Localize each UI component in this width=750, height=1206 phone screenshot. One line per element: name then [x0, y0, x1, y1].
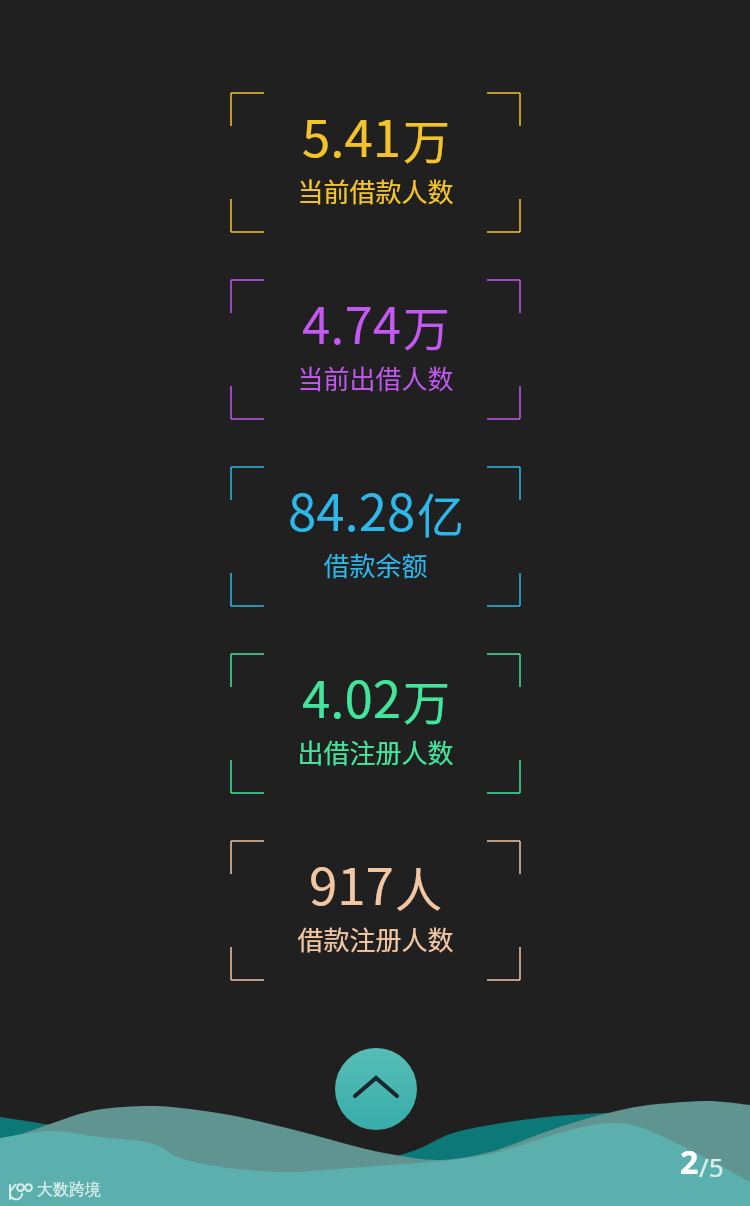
- staticText: 借款注册人数: [297, 920, 454, 958]
- staticText: 当前借款人数: [297, 172, 454, 210]
- staticText: 4.02: [302, 659, 402, 733]
- staticText: /5: [699, 1149, 724, 1184]
- staticText: 917: [309, 846, 394, 920]
- button[interactable]: 5.41: [231, 93, 520, 232]
- staticText: 84.28: [288, 472, 416, 546]
- button[interactable]: 917: [231, 841, 520, 980]
- staticText: 亿: [417, 478, 464, 546]
- staticText: 当前出借人数: [297, 359, 454, 397]
- button[interactable]: 4.74: [231, 280, 520, 419]
- staticText: 借款余额: [323, 546, 428, 584]
- staticText: 2: [680, 1140, 699, 1184]
- staticText: 万: [403, 104, 450, 172]
- staticText: 万: [403, 291, 450, 359]
- staticText: 出借注册人数: [297, 733, 454, 771]
- staticText: 大数跨境: [37, 1180, 101, 1200]
- button[interactable]: 84.28: [231, 467, 520, 606]
- button[interactable]: Scroll to top: [335, 1048, 417, 1130]
- staticText: 万: [403, 665, 450, 733]
- button[interactable]: 4.02: [231, 654, 520, 793]
- staticText: 4.74: [302, 285, 402, 359]
- staticText: 5.41: [302, 98, 402, 172]
- staticText: 人: [395, 852, 442, 920]
